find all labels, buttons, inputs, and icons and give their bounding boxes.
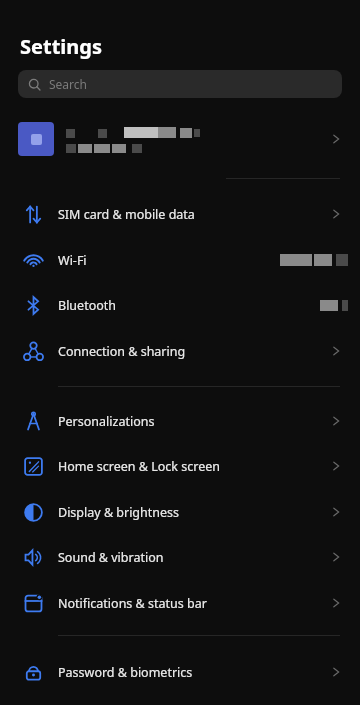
staticText: SIM card & mobile data xyxy=(58,206,195,223)
staticText: Display & brightness xyxy=(58,504,180,521)
button[interactable]: Password & biometrics xyxy=(0,650,360,694)
button[interactable]: Bluetooth xyxy=(0,283,360,327)
button[interactable]: Account xyxy=(0,113,360,165)
staticText: Connection & sharing xyxy=(58,343,186,360)
button[interactable]: SIM card & mobile data xyxy=(0,192,360,236)
button[interactable]: Search xyxy=(18,70,342,98)
button[interactable]: Connection & sharing xyxy=(0,329,360,373)
staticText: Sound & vibration xyxy=(58,549,164,566)
staticText: Wi-Fi xyxy=(58,252,87,269)
staticText: Home screen & Lock screen xyxy=(58,458,220,475)
button[interactable]: Personalizations xyxy=(0,399,360,443)
staticText: Password & biometrics xyxy=(58,664,193,681)
button[interactable]: Sound & vibration xyxy=(0,535,360,579)
staticText: Personalizations xyxy=(58,413,155,430)
button[interactable]: Home screen & Lock screen xyxy=(0,444,360,488)
button[interactable]: Display & brightness xyxy=(0,490,360,534)
staticText: Notifications & status bar xyxy=(58,595,207,612)
staticText: Search xyxy=(49,76,87,92)
staticText: Bluetooth xyxy=(58,297,117,314)
button[interactable]: Wi-Fi xyxy=(0,238,360,282)
button[interactable]: Notifications & status bar xyxy=(0,581,360,625)
staticText: Settings xyxy=(20,33,102,60)
